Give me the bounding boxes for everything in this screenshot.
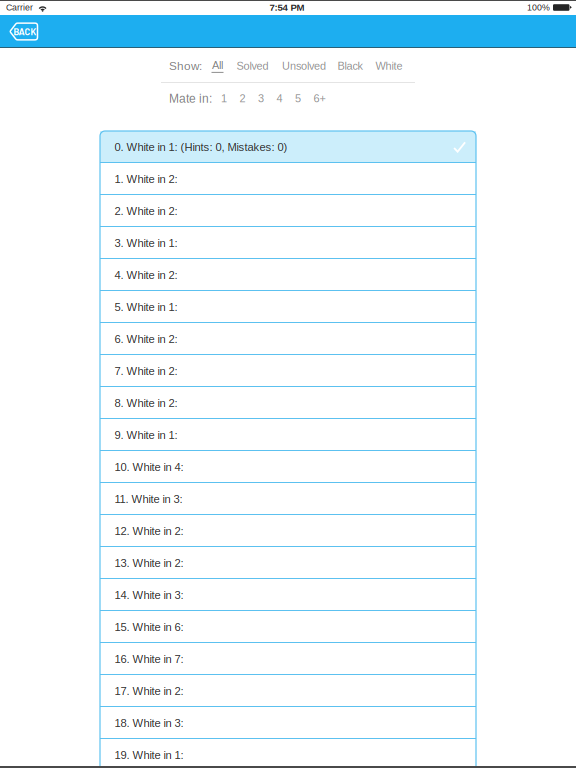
button[interactable]: 6+ xyxy=(313,89,326,107)
staticText: Unsolved xyxy=(282,60,326,72)
staticText: 14. White in 3: xyxy=(114,589,183,601)
button[interactable]: 5 xyxy=(295,89,308,107)
staticText: Show: xyxy=(169,59,202,72)
button[interactable]: 9. White in 1: xyxy=(100,419,476,451)
button[interactable]: 19. White in 1: xyxy=(100,739,476,768)
staticText: 2. White in 2: xyxy=(114,205,177,217)
button[interactable]: 5. White in 1: xyxy=(100,291,476,323)
staticText: 6+ xyxy=(313,92,325,105)
button[interactable]: 2 xyxy=(239,89,252,107)
button[interactable]: 16. White in 7: xyxy=(100,643,476,675)
button[interactable]: 1 xyxy=(221,89,234,107)
staticText: 100% xyxy=(527,3,550,12)
button[interactable]: 18. White in 3: xyxy=(100,707,476,739)
button[interactable]: Unsolved xyxy=(282,60,326,72)
staticText: 13. White in 2: xyxy=(114,557,183,569)
staticText: 4. White in 2: xyxy=(114,269,177,281)
button[interactable]: 12. White in 2: xyxy=(100,515,476,547)
staticText: 6. White in 2: xyxy=(114,333,177,345)
button[interactable]: 4 xyxy=(276,89,289,107)
button[interactable]: 17. White in 2: xyxy=(100,675,476,707)
staticText: 9. White in 1: xyxy=(114,429,177,441)
staticText: 3. White in 1: xyxy=(114,237,177,249)
button[interactable]: 1. White in 2: xyxy=(100,163,476,195)
staticText: 2 xyxy=(239,92,245,105)
staticText: 18. White in 3: xyxy=(114,717,183,729)
button[interactable]: 15. White in 6: xyxy=(100,611,476,643)
staticText: All xyxy=(212,59,223,71)
staticText: 0. White in 1: (Hints: 0, Mistakes: 0) xyxy=(114,141,287,153)
button[interactable]: Back xyxy=(9,22,38,41)
staticText: Solved xyxy=(236,60,268,72)
staticText: 12. White in 2: xyxy=(114,525,183,537)
staticText: 15. White in 6: xyxy=(114,621,183,633)
staticText: 7. White in 2: xyxy=(114,365,177,377)
staticText: 5 xyxy=(295,92,301,105)
staticText: Carrier xyxy=(6,3,33,12)
button[interactable]: 3 xyxy=(258,89,271,107)
staticText: Black xyxy=(337,60,362,72)
button[interactable]: 3. White in 1: xyxy=(100,227,476,259)
staticText: 7:54 PM xyxy=(270,2,305,13)
staticText: 4 xyxy=(276,92,282,105)
button[interactable]: All xyxy=(211,59,223,73)
button[interactable]: 13. White in 2: xyxy=(100,547,476,579)
button[interactable]: 11. White in 3: xyxy=(100,483,476,515)
staticText: 17. White in 2: xyxy=(114,685,183,697)
button[interactable]: 6. White in 2: xyxy=(100,323,476,355)
button[interactable]: 0. White in 1: (Hints: 0, Mistakes: 0) xyxy=(100,131,476,163)
staticText: 1. White in 2: xyxy=(114,173,177,185)
button[interactable]: 14. White in 3: xyxy=(100,579,476,611)
button[interactable]: 7. White in 2: xyxy=(100,355,476,387)
staticText: 1 xyxy=(221,92,227,105)
button[interactable]: White xyxy=(375,60,402,72)
staticText: 16. White in 7: xyxy=(114,653,183,665)
staticText: Mate in: xyxy=(169,92,212,105)
staticText: 11. White in 3: xyxy=(114,493,182,505)
staticText: 8. White in 2: xyxy=(114,397,177,409)
button[interactable]: Black xyxy=(337,60,362,72)
button[interactable]: Solved xyxy=(236,60,268,72)
button[interactable]: 10. White in 4: xyxy=(100,451,476,483)
button[interactable]: 4. White in 2: xyxy=(100,259,476,291)
button[interactable]: 2. White in 2: xyxy=(100,195,476,227)
staticText: BACK xyxy=(13,26,36,37)
staticText: 10. White in 4: xyxy=(114,461,183,473)
staticText: 3 xyxy=(258,92,264,105)
staticText: White xyxy=(375,60,402,72)
button[interactable]: 8. White in 2: xyxy=(100,387,476,419)
staticText: 19. White in 1: xyxy=(114,749,183,761)
staticText: 5. White in 1: xyxy=(114,301,177,313)
